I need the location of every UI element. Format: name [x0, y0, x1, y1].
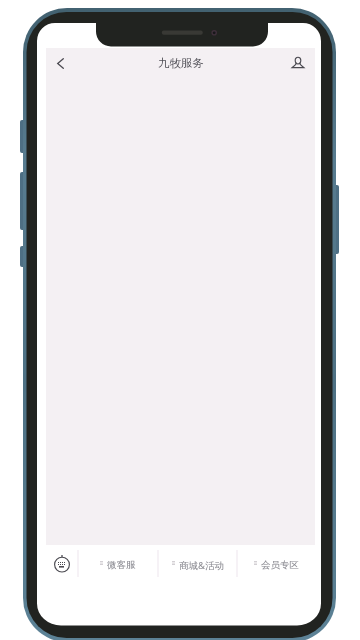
- button[interactable]: 商城&活动: [158, 545, 237, 585]
- button[interactable]: 会员专区: [237, 545, 316, 585]
- staticText: 微客服: [107, 559, 136, 571]
- staticText: 九牧服务: [158, 56, 204, 70]
- button[interactable]: Profile: [284, 48, 312, 76]
- button[interactable]: Back: [47, 49, 75, 77]
- button[interactable]: 微客服: [78, 545, 158, 585]
- button[interactable]: Keyboard: [48, 550, 76, 578]
- staticText: 会员专区: [261, 559, 299, 571]
- staticText: 商城&活动: [179, 559, 224, 572]
